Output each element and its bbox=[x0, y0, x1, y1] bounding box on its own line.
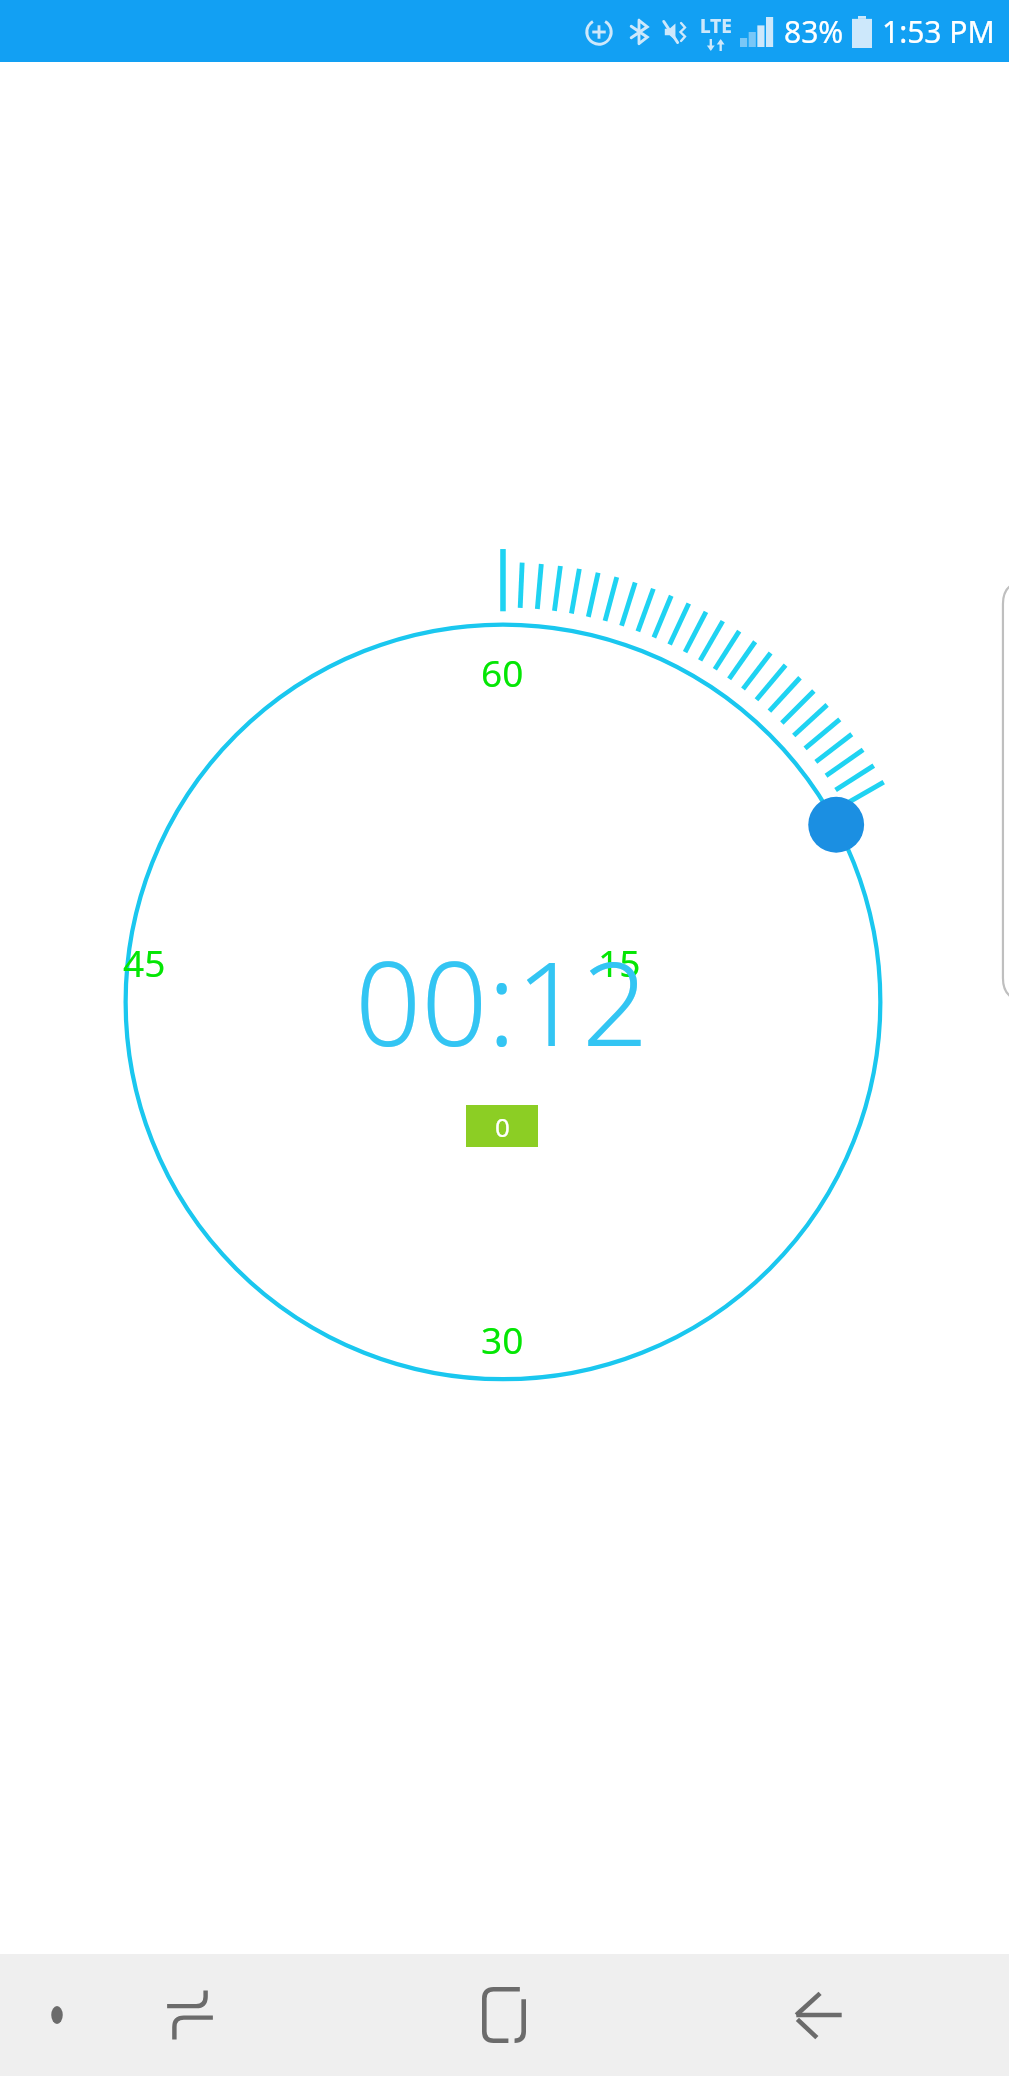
button[interactable]: Recent apps bbox=[130, 1955, 250, 2075]
button[interactable]: 0 bbox=[466, 1105, 538, 1147]
staticText: 45 bbox=[123, 937, 166, 987]
staticText: 83% bbox=[784, 11, 844, 52]
staticText: 00:12 bbox=[355, 922, 649, 1080]
button[interactable]: Back bbox=[759, 1955, 879, 2075]
staticText: 30 bbox=[481, 1314, 524, 1364]
staticText: LTE bbox=[700, 13, 732, 39]
button[interactable]: Home bbox=[444, 1955, 564, 2075]
staticText: 60 bbox=[481, 647, 524, 697]
staticText: 0 bbox=[495, 1109, 510, 1144]
staticText: 15 bbox=[598, 937, 641, 987]
button[interactable]: Timer dial, 00:12 bbox=[0, 0, 1009, 2076]
staticText: 1:53 PM bbox=[882, 11, 995, 52]
